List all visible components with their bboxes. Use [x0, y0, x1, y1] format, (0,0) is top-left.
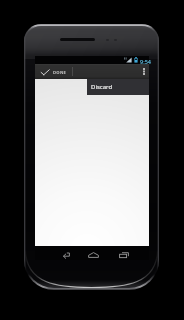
staticText: Discard: [91, 83, 113, 91]
button[interactable]: Back: [56, 246, 76, 260]
button[interactable]: Discard: [87, 79, 149, 95]
button[interactable]: More options: [138, 64, 149, 79]
button[interactable]: Recent apps: [114, 246, 134, 260]
button[interactable]: Home: [83, 246, 103, 260]
staticText: DONE: [53, 70, 67, 76]
staticText: 9:54: [140, 58, 151, 65]
